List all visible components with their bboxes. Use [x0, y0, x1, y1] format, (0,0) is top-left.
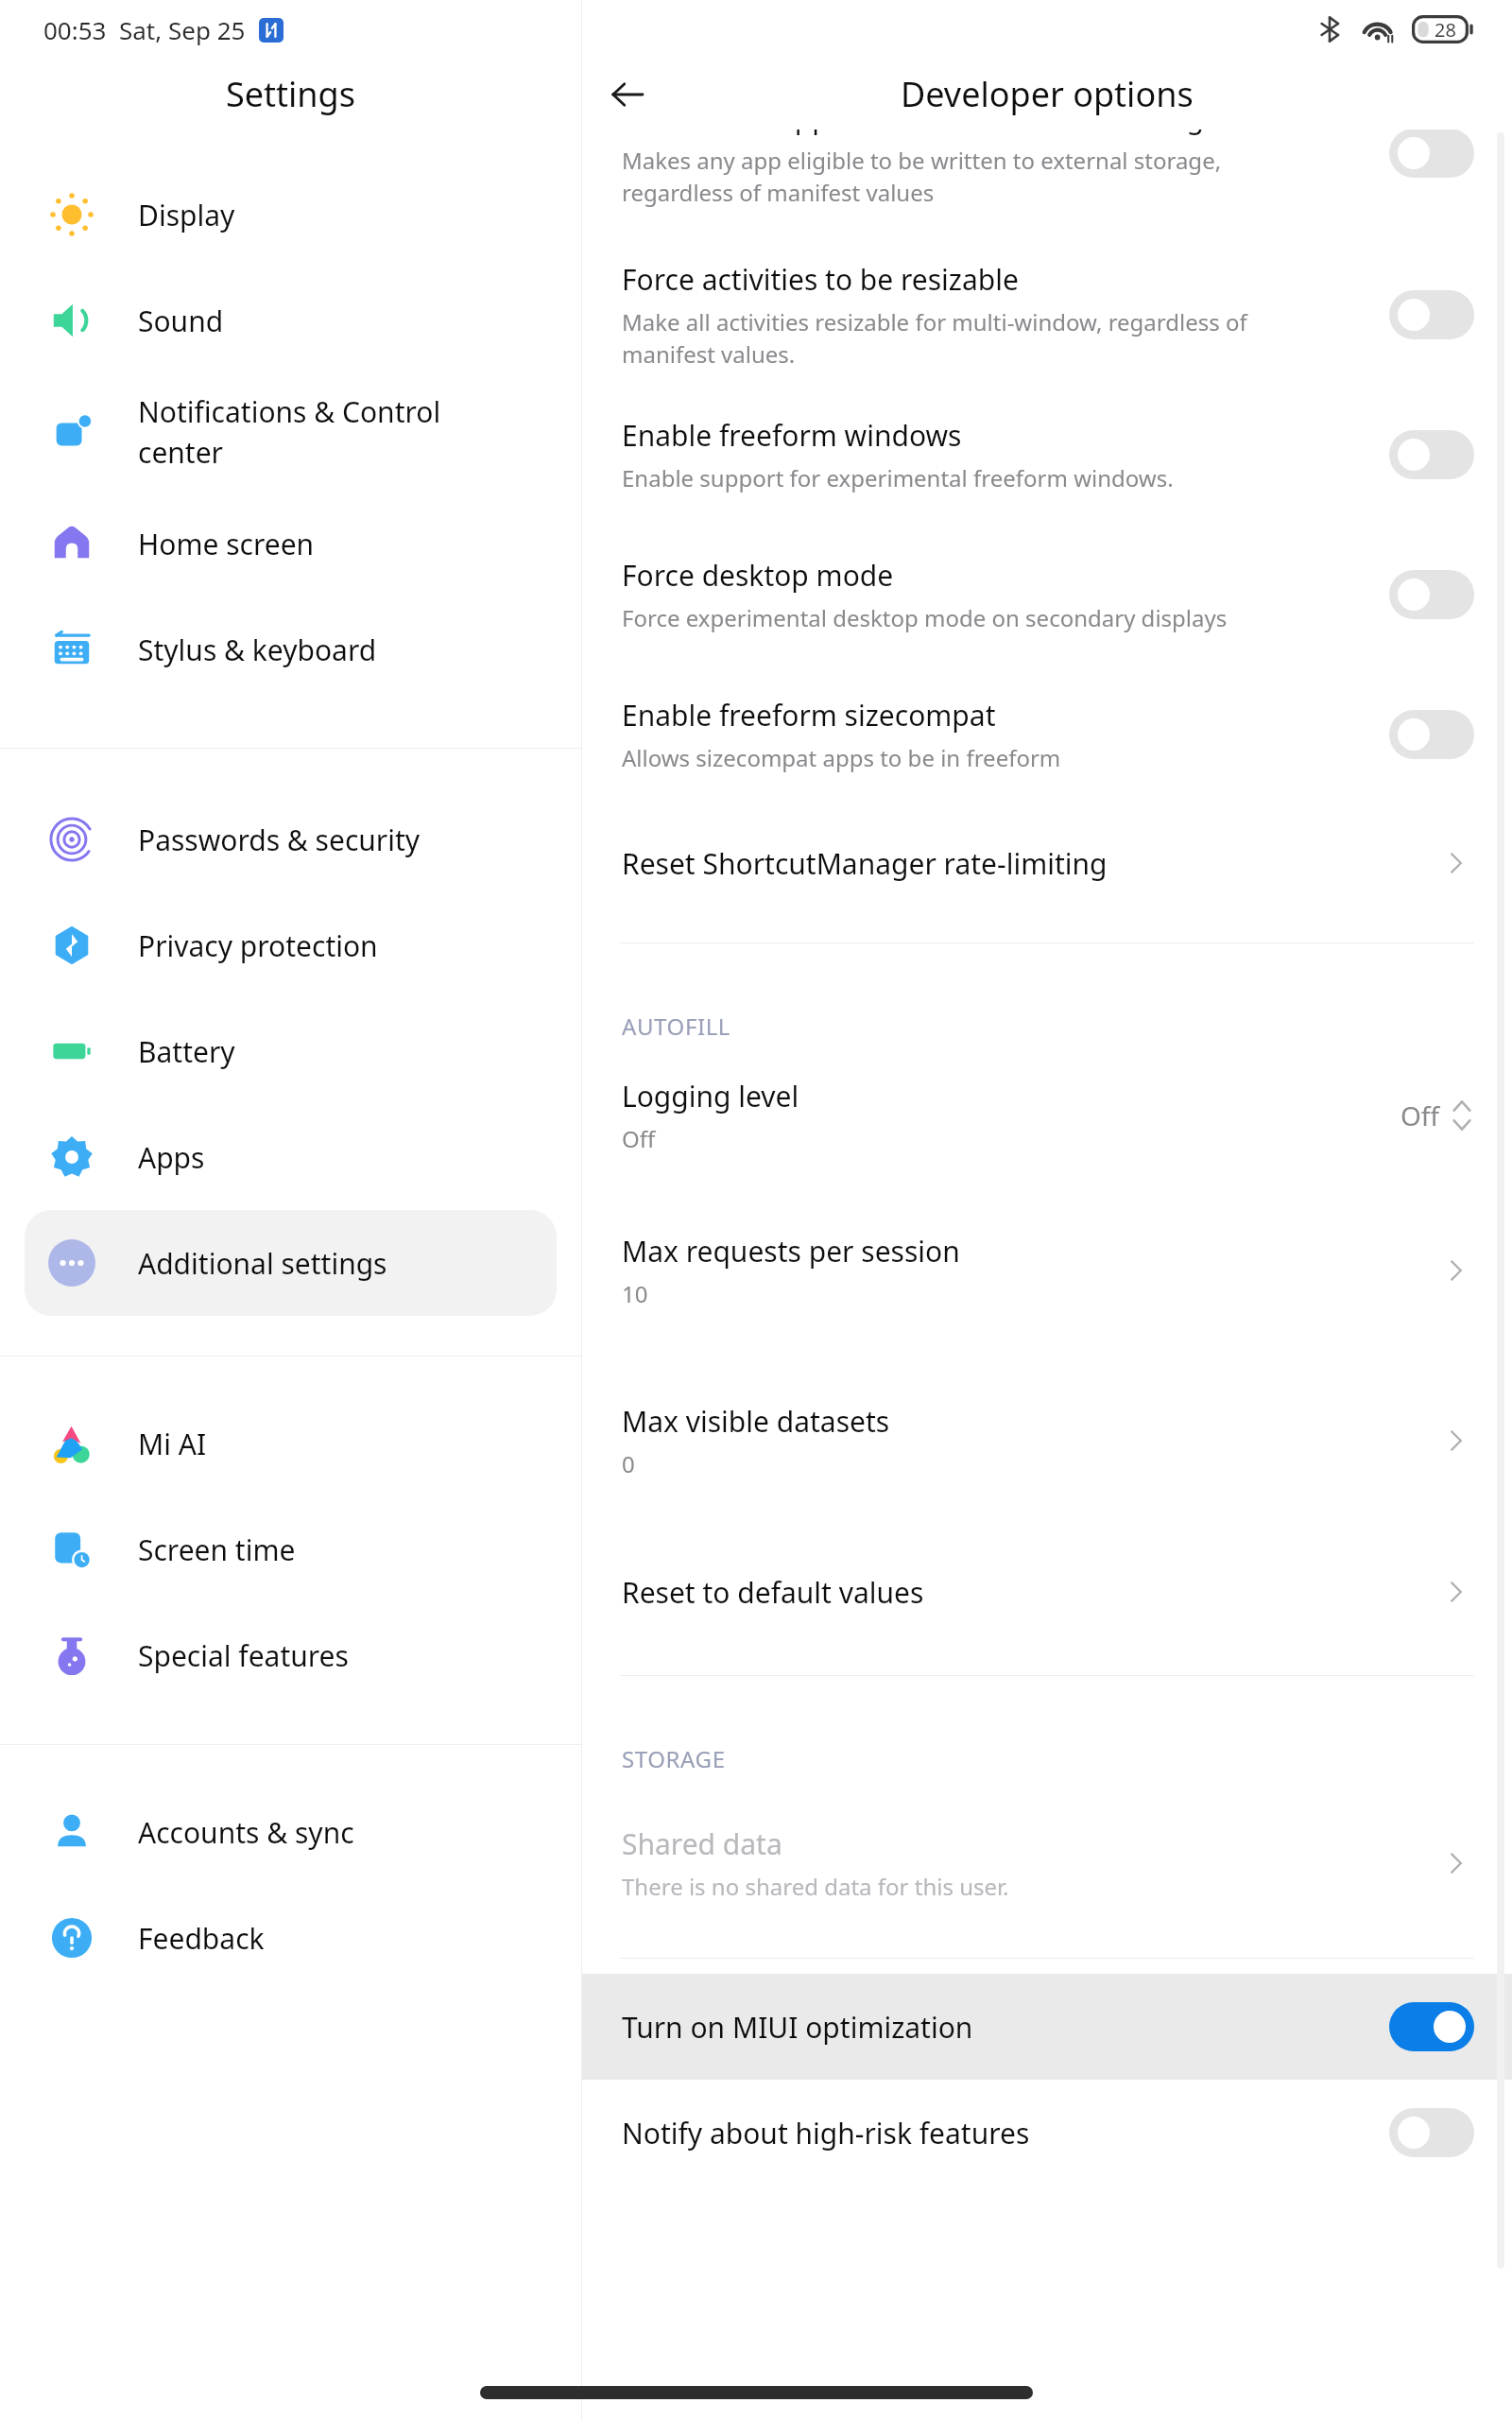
button[interactable]: Enable freeform sizecompat — [582, 665, 1512, 804]
staticText: Screen time — [138, 1530, 296, 1569]
button[interactable]: Screen time — [25, 1496, 557, 1602]
staticText: Stylus & keyboard — [138, 631, 377, 669]
button[interactable]: Off — [1389, 290, 1474, 339]
staticText: 10 — [622, 1278, 648, 1309]
staticText: Enable freeform sizecompat — [622, 696, 996, 735]
button[interactable]: Home screen — [25, 491, 557, 596]
staticText: Feedback — [138, 1919, 265, 1958]
button[interactable]: Battery — [25, 998, 557, 1104]
staticText: Shared data — [622, 1824, 782, 1863]
button[interactable]: Display — [25, 162, 557, 268]
button[interactable]: Privacy protection — [25, 892, 557, 998]
button[interactable]: Shared data — [582, 1778, 1512, 1948]
staticText: Display — [138, 196, 235, 234]
button[interactable]: Force desktop mode — [582, 525, 1512, 665]
staticText: Makes any app eligible to be written to … — [622, 145, 1222, 208]
button[interactable]: Off — [1389, 710, 1474, 759]
staticText: Force desktop mode — [622, 556, 894, 595]
button[interactable]: Force activities to be resizable — [582, 245, 1512, 385]
button[interactable]: Max visible datasets — [582, 1356, 1512, 1526]
button[interactable]: Mi AI — [25, 1391, 557, 1496]
staticText: Reset to default values — [622, 1573, 924, 1612]
staticText: Force experimental desktop mode on secon… — [622, 602, 1228, 633]
button[interactable]: Passwords & security — [25, 786, 557, 892]
button[interactable]: Sound — [25, 268, 557, 373]
staticText: There is no shared data for this user. — [622, 1871, 1009, 1902]
staticText: Logging level — [622, 1077, 799, 1115]
staticText: Enable freeform windows — [622, 416, 962, 455]
button[interactable]: Reset ShortcutManager rate-limiting — [582, 804, 1512, 922]
button[interactable]: Feedback — [25, 1885, 557, 1991]
staticText: 0 — [622, 1448, 635, 1479]
button[interactable]: Stylus & keyboard — [25, 596, 557, 702]
button[interactable]: Apps — [25, 1104, 557, 1210]
button[interactable]: Off — [1389, 430, 1474, 479]
button[interactable]: On — [1389, 2002, 1474, 2051]
button[interactable]: Turn on MIUI optimization — [582, 1974, 1512, 2080]
staticText: Force allow apps to write on external st… — [622, 130, 1220, 137]
button[interactable]: Special features — [25, 1602, 557, 1708]
staticText: Off — [1400, 1098, 1440, 1133]
staticText: Privacy protection — [138, 926, 378, 965]
staticText: Accounts & sync — [138, 1813, 354, 1852]
button[interactable]: Off — [1389, 570, 1474, 619]
button[interactable]: Reset to default values — [582, 1526, 1512, 1658]
staticText: Notifications & Control center — [138, 392, 441, 472]
staticText: Allows sizecompat apps to be in freeform — [622, 742, 1061, 773]
staticText: Home screen — [138, 525, 315, 563]
button[interactable]: Logging level — [582, 1046, 1512, 1185]
staticText: 00:53 Sat, Sep 25 — [43, 13, 246, 46]
staticText: Force activities to be resizable — [622, 260, 1019, 299]
staticText: Passwords & security — [138, 821, 421, 859]
staticText: Battery — [138, 1032, 235, 1071]
button[interactable]: Enable freeform windows — [582, 385, 1512, 525]
button[interactable]: Off — [1389, 130, 1474, 178]
button[interactable]: Additional settings — [25, 1210, 557, 1316]
staticText: Sound — [138, 302, 224, 340]
button[interactable]: Back — [601, 68, 654, 121]
button[interactable]: Notify about high-risk features — [582, 2080, 1512, 2186]
button[interactable]: Accounts & sync — [25, 1779, 557, 1885]
staticText: Make all activities resizable for multi-… — [622, 306, 1247, 370]
staticText: Special features — [138, 1636, 349, 1675]
staticText: Enable support for experimental freeform… — [622, 462, 1174, 493]
staticText: Settings — [226, 71, 355, 117]
staticText: Apps — [138, 1138, 205, 1177]
staticText: Additional settings — [138, 1244, 387, 1283]
staticText: Max requests per session — [622, 1232, 960, 1270]
button[interactable]: Notifications & Control center — [25, 373, 557, 491]
staticText: STORAGE — [622, 1743, 726, 1774]
staticText: Off — [622, 1123, 656, 1154]
staticText: AUTOFILL — [622, 1011, 731, 1042]
staticText: Mi AI — [138, 1425, 207, 1463]
button[interactable]: Force allow apps to write on external st… — [582, 130, 1512, 211]
button[interactable]: Max requests per session — [582, 1185, 1512, 1356]
staticText: Reset ShortcutManager rate-limiting — [622, 844, 1108, 883]
button[interactable]: Off — [1389, 2108, 1474, 2157]
staticText: Developer options — [901, 71, 1194, 117]
staticText: 28 — [1435, 17, 1456, 43]
staticText: Max visible datasets — [622, 1402, 890, 1441]
staticText: Turn on MIUI optimization — [622, 2008, 973, 2047]
staticText: Notify about high-risk features — [622, 2114, 1030, 2152]
